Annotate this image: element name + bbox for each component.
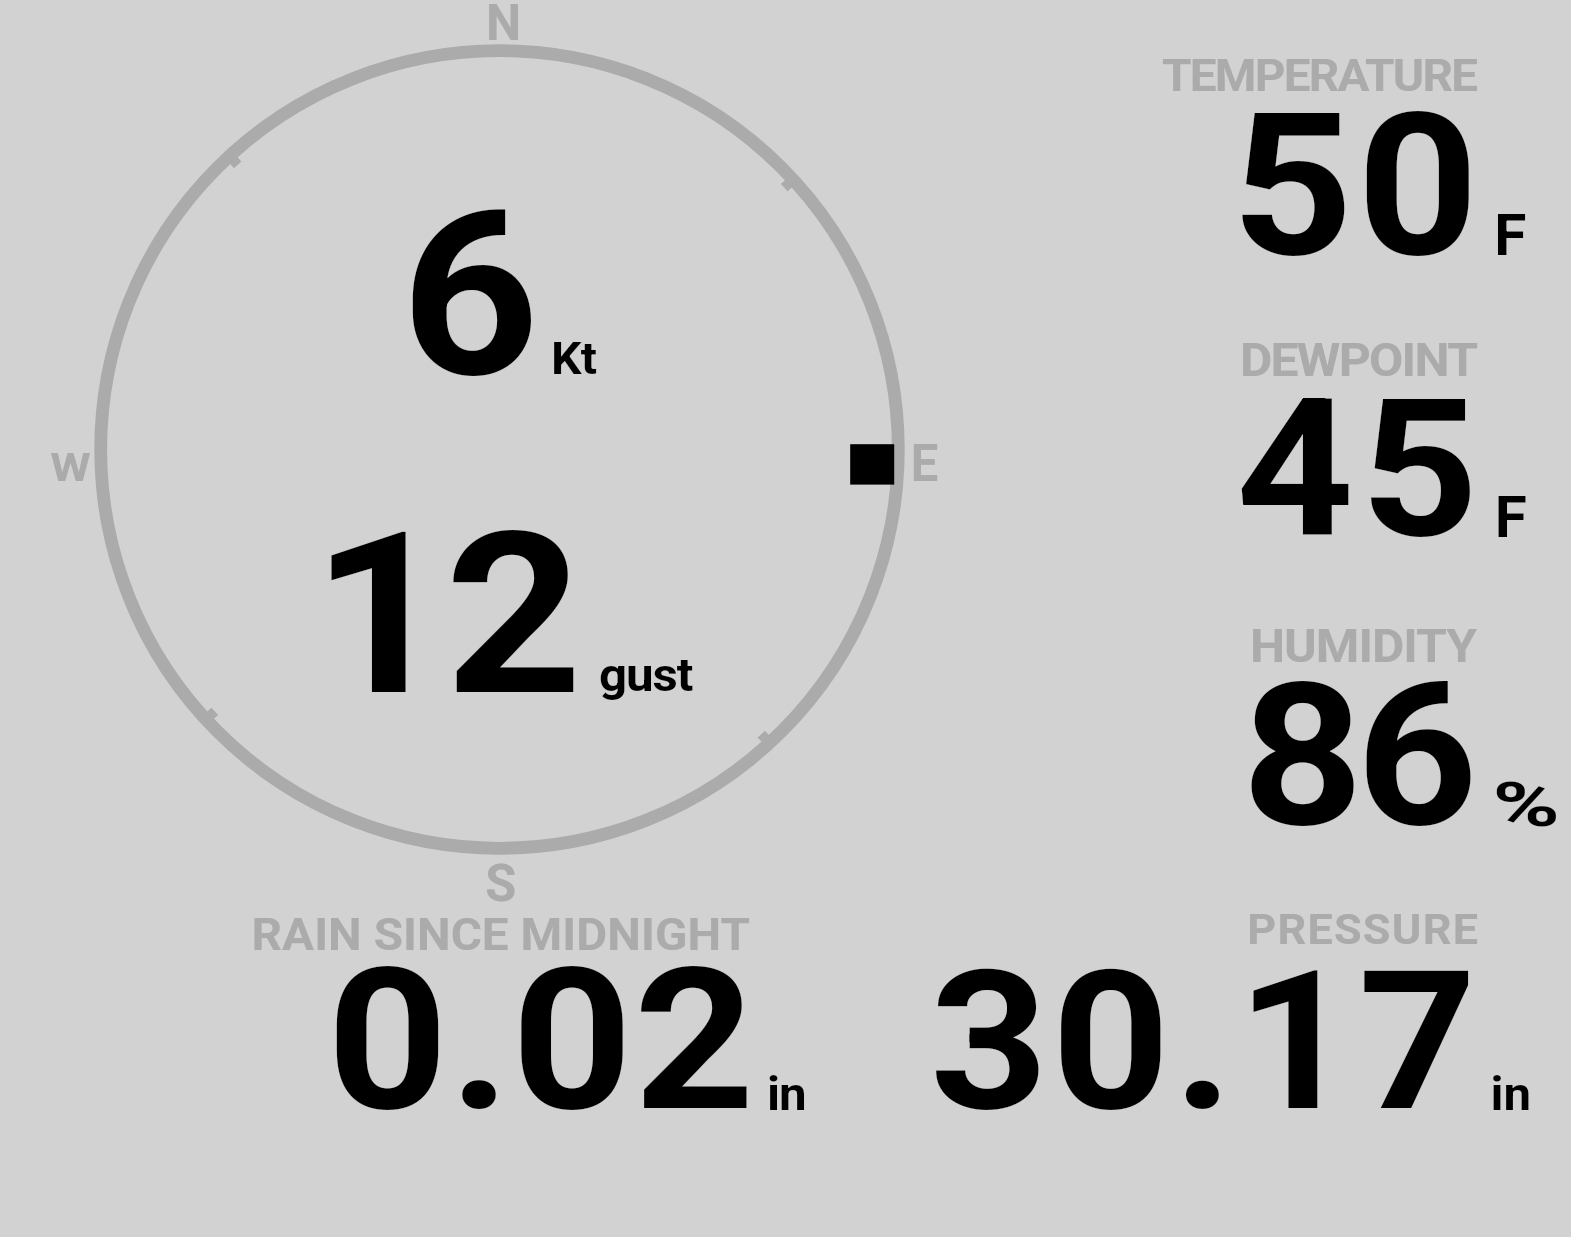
button[interactable]: Pressure 30.17 in bbox=[900, 905, 1550, 1120]
button[interactable]: Rain since midnight 0.02 in bbox=[240, 905, 820, 1120]
button[interactable]: Dewpoint 45 F bbox=[1140, 330, 1560, 550]
button[interactable]: Wind direction compass bbox=[94, 44, 906, 856]
button[interactable]: Temperature 50 F bbox=[1140, 45, 1560, 270]
button[interactable]: Humidity 86 percent bbox=[1140, 615, 1560, 840]
